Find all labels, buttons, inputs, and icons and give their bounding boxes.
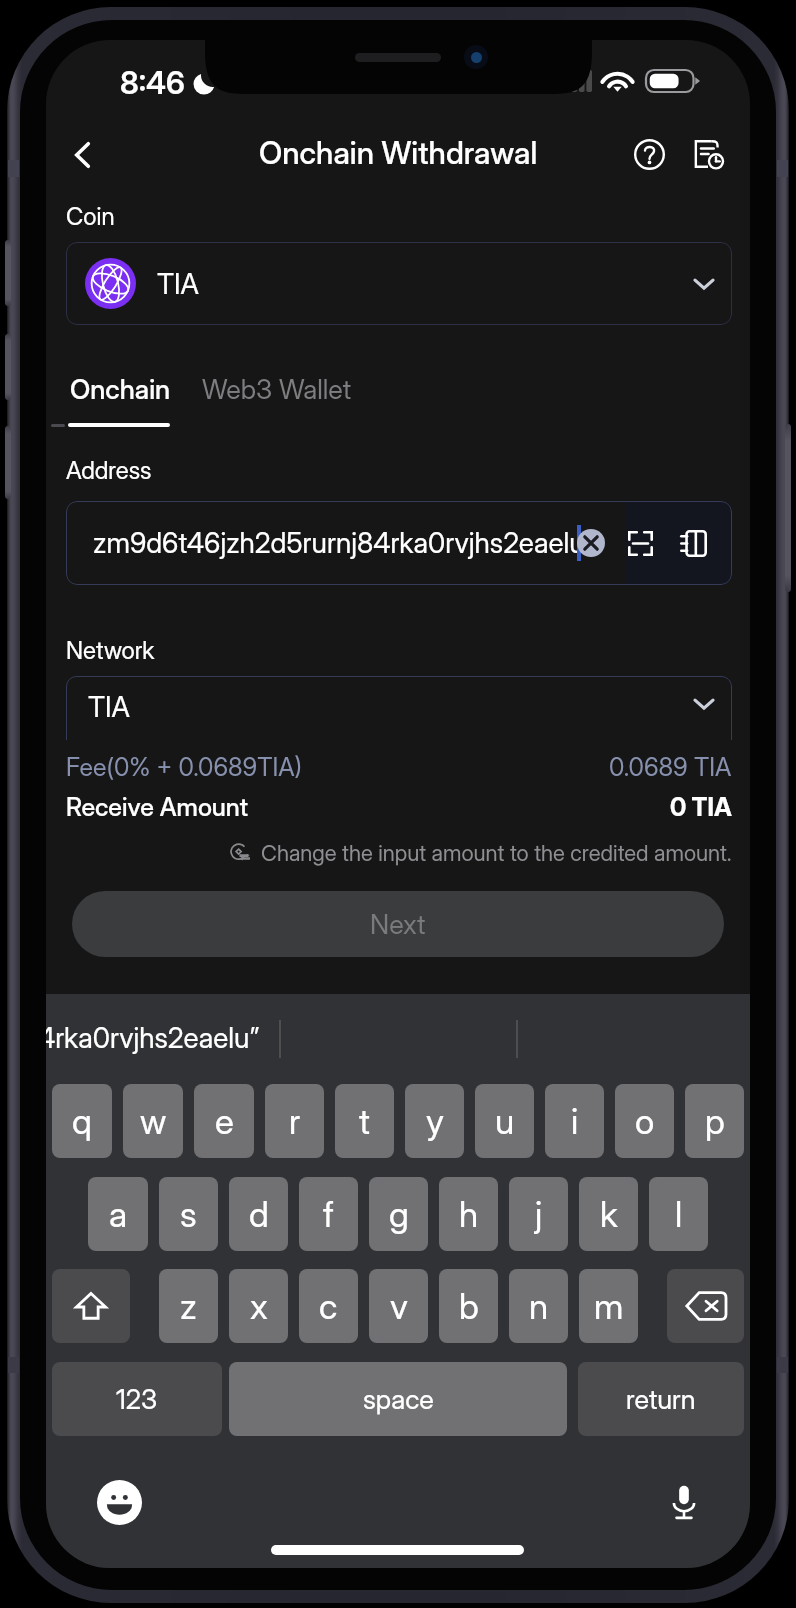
staticText: q — [72, 1100, 92, 1142]
button[interactable]: f — [299, 1177, 358, 1251]
button[interactable]: y — [405, 1084, 464, 1158]
button[interactable]: a — [88, 1177, 148, 1251]
staticText: f — [323, 1193, 334, 1235]
button[interactable]: Back — [46, 120, 132, 190]
button[interactable]: Backspace — [667, 1269, 744, 1343]
staticText: l — [675, 1193, 683, 1235]
button[interactable]: c — [299, 1269, 358, 1343]
button[interactable]: TIA — [66, 676, 732, 727]
button[interactable]: m — [579, 1269, 638, 1343]
staticText: 0.0689 TIA — [609, 752, 732, 782]
button[interactable]: Next — [72, 891, 724, 957]
button[interactable]: Scan QR code — [618, 521, 662, 565]
button[interactable]: u — [475, 1084, 534, 1158]
staticText: h — [459, 1193, 479, 1235]
button[interactable]: 123 — [52, 1362, 222, 1436]
button[interactable]: Onchain — [70, 373, 171, 406]
button[interactable]: Address book — [671, 521, 715, 565]
staticText: k — [600, 1193, 618, 1235]
staticText: j — [535, 1193, 543, 1235]
button[interactable]: t — [335, 1084, 394, 1158]
staticText: e — [215, 1100, 234, 1142]
staticText: m — [594, 1285, 624, 1327]
button[interactable]: q — [52, 1084, 112, 1158]
staticText: a — [109, 1193, 128, 1235]
button[interactable]: s — [159, 1177, 218, 1251]
staticText: Fee(0% + 0.0689TIA) — [66, 752, 303, 782]
staticText: Web3 Wallet — [202, 373, 352, 406]
staticText: b — [459, 1285, 479, 1327]
staticText: 0 TIA — [670, 792, 732, 822]
staticText: Onchain — [70, 373, 171, 406]
staticText: u — [495, 1100, 515, 1142]
staticText: o — [635, 1100, 655, 1142]
button[interactable]: k — [579, 1177, 638, 1251]
staticText: 123 — [116, 1383, 158, 1416]
button[interactable]: w — [123, 1084, 183, 1158]
staticText: t — [359, 1100, 370, 1142]
button[interactable]: Clear — [577, 529, 605, 557]
staticText: zm9d6t46jzh2d5rurnj84rka0rvjhs2eaelu — [93, 526, 585, 560]
staticText: TIA — [88, 690, 130, 724]
staticText: 8:46 — [120, 64, 185, 102]
button[interactable]: Dictate — [658, 1476, 710, 1528]
staticText: Onchain Withdrawal — [259, 134, 538, 172]
staticText: s — [180, 1193, 197, 1235]
button[interactable]: h — [439, 1177, 498, 1251]
button[interactable]: j — [509, 1177, 568, 1251]
button[interactable]: Shift — [52, 1269, 130, 1343]
button[interactable]: p — [685, 1084, 744, 1158]
button[interactable]: space — [229, 1362, 567, 1436]
staticText: Network — [66, 636, 155, 665]
button[interactable]: e — [194, 1084, 254, 1158]
button[interactable]: Help — [614, 119, 684, 189]
staticText: n — [529, 1285, 549, 1327]
button[interactable]: n — [509, 1269, 568, 1343]
button[interactable]: l — [649, 1177, 708, 1251]
staticText: 4rka0rvjhs2eaelu” — [46, 1021, 260, 1055]
button[interactable]: r — [265, 1084, 324, 1158]
staticText: w — [140, 1100, 167, 1142]
staticText: v — [390, 1285, 408, 1327]
button[interactable]: z — [159, 1269, 218, 1343]
staticText: space — [363, 1383, 434, 1416]
button[interactable]: d — [229, 1177, 288, 1251]
staticText: x — [250, 1285, 268, 1327]
staticText: p — [705, 1100, 725, 1142]
staticText: r — [289, 1100, 301, 1142]
button[interactable]: Transaction history — [673, 119, 743, 189]
staticText: d — [249, 1193, 269, 1235]
button[interactable]: g — [369, 1177, 428, 1251]
staticText: g — [389, 1193, 409, 1235]
button[interactable]: x — [229, 1269, 288, 1343]
staticText: Receive Amount — [66, 792, 249, 822]
staticText: Change the input amount to the credited … — [261, 840, 732, 867]
button[interactable]: b — [439, 1269, 498, 1343]
staticText: Coin — [66, 202, 115, 231]
staticText: c — [319, 1285, 338, 1327]
button[interactable]: Web3 Wallet — [202, 373, 352, 406]
staticText: z — [180, 1285, 197, 1327]
button[interactable]: i — [545, 1084, 604, 1158]
button[interactable]: TIA — [66, 242, 732, 325]
button[interactable]: v — [369, 1269, 428, 1343]
staticText: return — [626, 1383, 696, 1416]
staticText: TIA — [157, 267, 199, 301]
button[interactable]: Emoji keyboard — [93, 1476, 145, 1528]
staticText: Address — [66, 456, 152, 485]
staticText: i — [571, 1100, 579, 1142]
staticText: y — [426, 1100, 444, 1142]
button[interactable]: o — [615, 1084, 674, 1158]
button[interactable]: return — [578, 1362, 744, 1436]
staticText: Next — [370, 908, 426, 941]
